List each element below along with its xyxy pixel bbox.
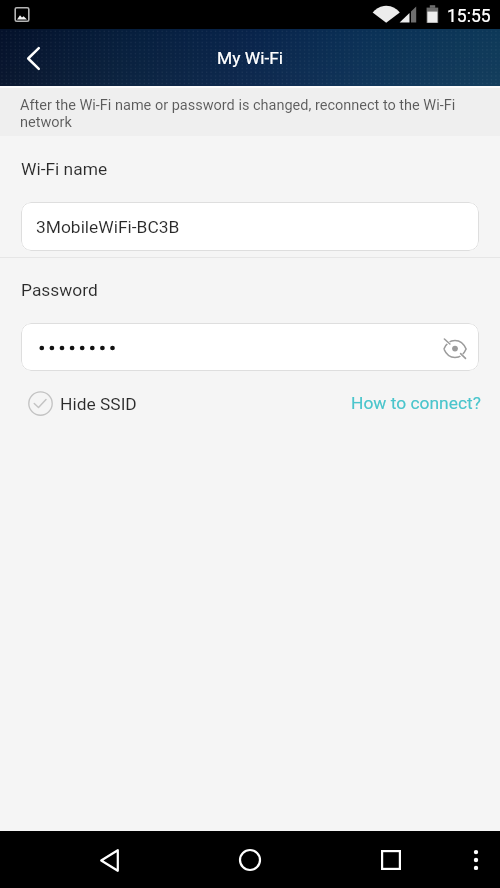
staticText: Hide SSID — [60, 394, 137, 414]
staticText: Password — [21, 280, 98, 300]
staticText: After the Wi-Fi name or password is chan… — [20, 97, 480, 131]
staticText: 15:55 — [447, 6, 491, 27]
button[interactable]: 3MobileWiFi-BC3B — [21, 202, 479, 251]
button[interactable]: More options — [460, 844, 492, 876]
staticText: 3MobileWiFi-BC3B — [36, 217, 180, 237]
button[interactable]: Home — [234, 844, 266, 876]
button[interactable]: Back — [7, 32, 59, 84]
button[interactable]: Recent apps — [375, 844, 407, 876]
button[interactable]: Hide SSID — [21, 391, 137, 416]
button[interactable]: Back — [93, 844, 125, 876]
button[interactable]: How to connect? — [351, 393, 500, 413]
button[interactable]: Show password — [21, 323, 479, 371]
staticText: My Wi-Fi — [217, 48, 284, 68]
staticText: Wi-Fi name — [21, 159, 108, 179]
button[interactable]: Show password — [432, 324, 479, 371]
